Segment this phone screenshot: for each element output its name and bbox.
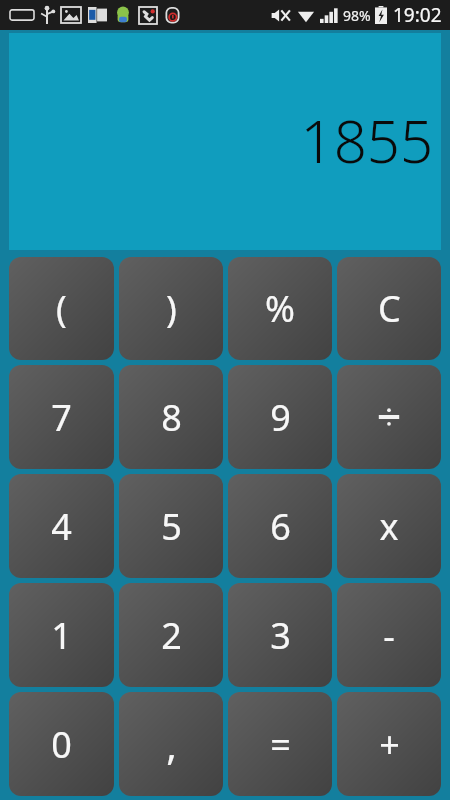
button[interactable] [337,365,441,469]
staticText: 2 [161,611,182,660]
button[interactable]: 5 [119,474,223,578]
staticText: - [383,611,395,660]
button[interactable]: ( [9,257,114,360]
staticText: ) [166,284,177,333]
staticText: 9 [270,393,291,442]
staticText: ( [56,284,67,333]
button[interactable]: 8 [119,365,223,469]
staticText: 6 [270,502,291,551]
staticText: 8 [161,393,182,442]
button[interactable]: 3 [228,583,332,687]
staticText: 19:02 [393,2,442,28]
staticText: 7 [51,393,72,442]
staticText: , [166,717,177,771]
button[interactable]: , [119,692,223,796]
staticText: C [378,284,401,333]
button[interactable]: 4 [9,474,114,578]
button[interactable]: 7 [9,365,114,469]
button[interactable]: 1 [9,583,114,687]
staticText: x [379,502,399,551]
button[interactable]: + [337,692,441,796]
staticText: 98% [343,6,371,25]
button[interactable]: x [337,474,441,578]
staticText: 5 [161,502,182,551]
button[interactable]: 9 [228,365,332,469]
staticText: + [379,720,400,769]
staticText: = [270,720,291,769]
staticText: 4 [51,502,72,551]
staticText: 1855 [300,101,433,180]
button[interactable]: ) [119,257,223,360]
staticText: 1 [51,611,72,660]
button[interactable]: = [228,692,332,796]
button[interactable]: 0 [9,692,114,796]
button[interactable]: C [337,257,441,360]
button[interactable]: - [337,583,441,687]
button[interactable]: 1855 [9,33,441,250]
button[interactable]: 2 [119,583,223,687]
button[interactable]: 6 [228,474,332,578]
button[interactable]: % [228,257,332,360]
staticText: % [265,284,295,333]
staticText: 3 [270,611,291,660]
staticText: 0 [51,720,72,769]
